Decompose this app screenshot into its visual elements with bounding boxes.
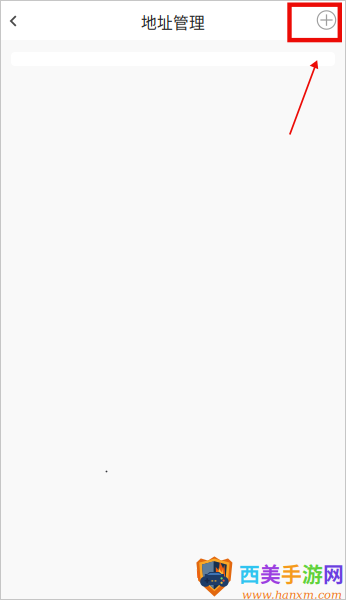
staticText: 西 xyxy=(239,558,260,588)
staticText: 网 xyxy=(323,558,344,588)
staticText: 美 xyxy=(260,558,281,588)
staticText: 手 xyxy=(281,558,302,588)
staticText: www.hanxm.com xyxy=(242,588,342,600)
button[interactable]: Back xyxy=(0,0,27,40)
staticText: 游 xyxy=(302,558,323,588)
staticText: 地址管理 xyxy=(141,11,205,33)
button[interactable]: Add address xyxy=(307,0,346,40)
